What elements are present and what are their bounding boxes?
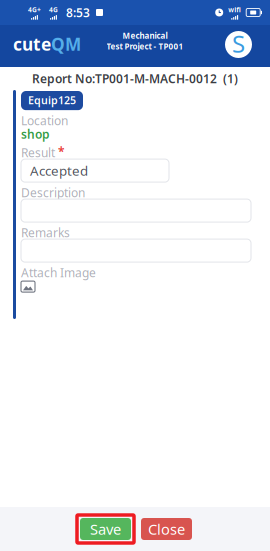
staticText: S bbox=[232, 28, 245, 59]
staticText: shop bbox=[21, 126, 50, 142]
staticText: * bbox=[58, 144, 65, 159]
staticText: 4G+ bbox=[28, 5, 41, 14]
staticText: Mechanical bbox=[122, 30, 167, 41]
button[interactable]: Account bbox=[219, 25, 270, 67]
staticText: cute bbox=[13, 32, 51, 55]
staticText: Test Project - TP001 bbox=[106, 41, 183, 52]
staticText: Close bbox=[148, 519, 185, 539]
staticText: Description bbox=[21, 185, 85, 200]
staticText: Accepted bbox=[30, 162, 88, 179]
button[interactable]: Close bbox=[141, 518, 192, 540]
staticText: Location bbox=[21, 113, 68, 129]
button[interactable]: cute bbox=[0, 25, 89, 67]
staticText: Remarks bbox=[21, 225, 70, 240]
staticText: Equip125 bbox=[28, 93, 76, 107]
staticText: Result bbox=[21, 145, 55, 160]
staticText: 8:53 bbox=[66, 4, 90, 20]
staticText: Report No:TP001-M-MACH-0012 (1) bbox=[32, 70, 238, 86]
button[interactable]: Save bbox=[76, 514, 135, 544]
button[interactable]: Attach image bbox=[21, 277, 35, 295]
staticText: Save bbox=[90, 519, 121, 539]
staticText: wifi bbox=[228, 5, 241, 14]
staticText: QM bbox=[51, 32, 81, 55]
staticText: 4G bbox=[49, 5, 58, 14]
staticText: Attach Image bbox=[21, 265, 96, 280]
